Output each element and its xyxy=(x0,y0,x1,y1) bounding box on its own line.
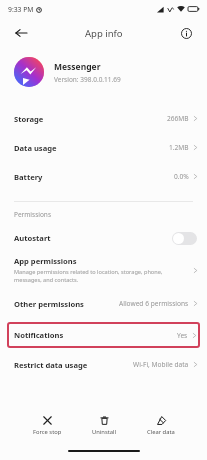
staticText: Wi-Fi, Mobile data xyxy=(133,360,189,369)
staticText: Notifications xyxy=(14,330,64,340)
button[interactable]: Storage xyxy=(0,104,207,133)
button[interactable]: About xyxy=(175,22,197,44)
button[interactable]: Clear data xyxy=(143,413,179,438)
staticText: Data usage xyxy=(14,143,57,153)
button[interactable]: Autostart xyxy=(0,225,207,251)
staticText: Other permissions xyxy=(14,299,84,309)
staticText: Clear data xyxy=(147,428,175,436)
staticText: 266MB xyxy=(167,114,189,123)
staticText: Battery xyxy=(14,172,43,182)
staticText: App info xyxy=(85,27,123,40)
button[interactable]: Notifications xyxy=(7,322,200,348)
staticText: 9:33 PM xyxy=(8,5,34,14)
button[interactable]: Battery xyxy=(0,162,207,191)
button[interactable]: App permissions xyxy=(0,251,207,289)
staticText: Messenger xyxy=(54,61,101,73)
staticText: Permissions xyxy=(14,210,52,219)
staticText: 0.0% xyxy=(174,172,189,181)
button[interactable]: Back xyxy=(10,22,32,44)
staticText: Restrict data usage xyxy=(14,360,88,370)
button[interactable]: Restrict data usage xyxy=(0,350,207,379)
staticText: Manage permissions related to location, … xyxy=(14,268,163,284)
button[interactable]: Force stop xyxy=(29,413,66,438)
staticText: Version: 398.0.0.11.69 xyxy=(54,75,121,84)
staticText: App permissions xyxy=(14,256,77,266)
staticText: Storage xyxy=(14,114,44,124)
staticText: 1.2MB xyxy=(169,143,189,152)
button[interactable]: Data usage xyxy=(0,133,207,162)
staticText: Allowed 6 permissions xyxy=(119,299,189,308)
staticText: Force stop xyxy=(33,428,62,436)
button[interactable]: Uninstall xyxy=(88,413,121,438)
button[interactable]: Other permissions xyxy=(0,289,207,318)
staticText: Autostart xyxy=(14,233,51,243)
staticText: Yes xyxy=(177,331,188,340)
staticText: Uninstall xyxy=(92,428,117,436)
